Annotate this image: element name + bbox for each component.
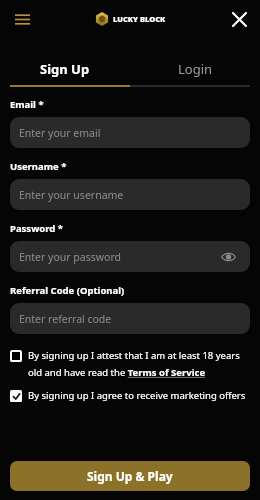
- staticText: Enter your username: [19, 188, 124, 202]
- staticText: Referral Code (Optional): [10, 284, 125, 297]
- button[interactable]: LUCKY BLOCK: [95, 12, 166, 26]
- button[interactable]: Open menu: [7, 4, 37, 34]
- button[interactable]: Sign Up & Play: [10, 461, 250, 491]
- button[interactable]: Enter your password: [10, 241, 250, 272]
- staticText: By signing up I agree to receive marketi…: [28, 389, 246, 402]
- button[interactable]: By signing up I attest that I am at leas…: [10, 349, 250, 379]
- staticText: Enter your email: [19, 126, 101, 140]
- staticText: By signing up I attest that I am at leas…: [28, 349, 250, 379]
- button[interactable]: Login: [130, 58, 260, 80]
- staticText: Enter your password: [19, 250, 121, 264]
- button[interactable]: Enter referral code: [10, 303, 250, 334]
- button[interactable]: Enter your username: [10, 179, 250, 210]
- button[interactable]: Enter your email: [10, 117, 250, 148]
- staticText: Sign Up: [40, 60, 90, 78]
- button[interactable]: Show password: [215, 244, 241, 270]
- button[interactable]: Close: [224, 4, 254, 34]
- staticText: Enter referral code: [19, 312, 112, 326]
- staticText: Login: [178, 60, 213, 78]
- staticText: Password *: [10, 222, 63, 235]
- staticText: Username *: [10, 160, 67, 173]
- button[interactable]: Sign Up: [0, 58, 130, 80]
- button[interactable]: By signing up I agree to receive marketi…: [10, 389, 250, 402]
- staticText: Email *: [10, 98, 44, 111]
- staticText: Sign Up & Play: [87, 468, 173, 484]
- staticText: LUCKY BLOCK: [113, 14, 166, 24]
